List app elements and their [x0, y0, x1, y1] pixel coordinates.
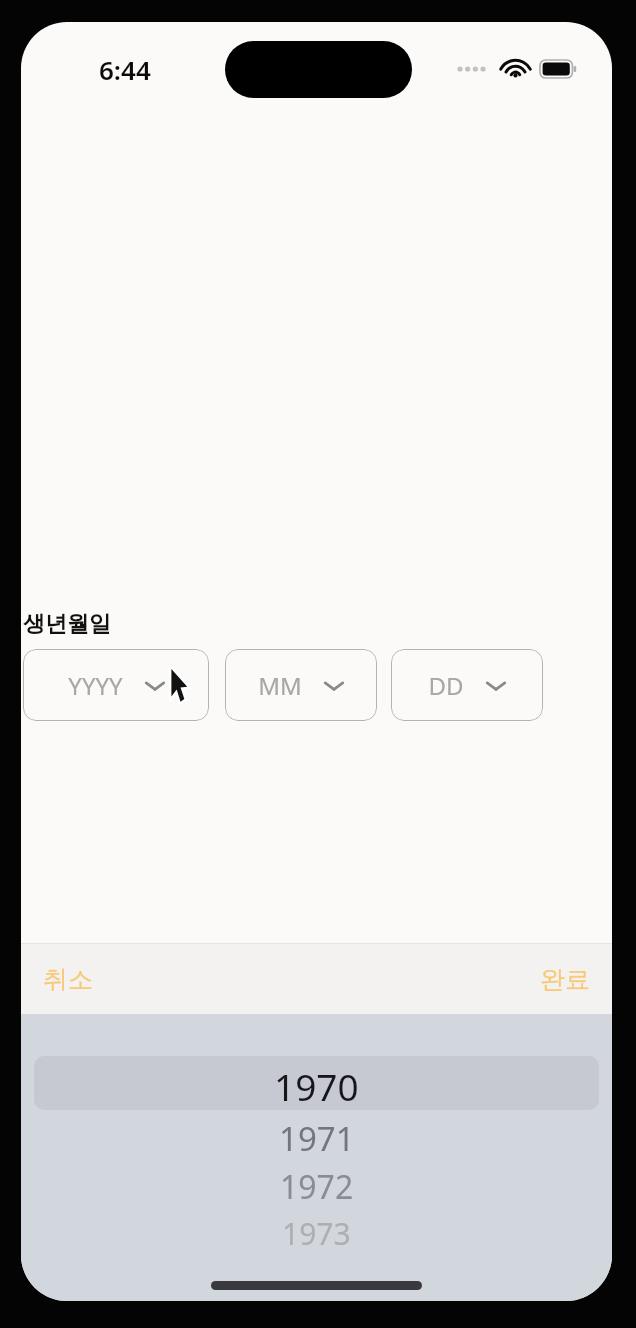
button[interactable]: YYYY [23, 649, 209, 721]
button[interactable]: 1972 [280, 1165, 354, 1209]
button[interactable]: 완료 [518, 951, 612, 1008]
staticText: 6:44 [99, 52, 151, 87]
staticText: DD [428, 669, 464, 702]
button[interactable]: MM [225, 649, 377, 721]
button[interactable]: 취소 [21, 951, 115, 1008]
button[interactable]: DD [391, 649, 543, 721]
button[interactable]: 1971 [279, 1116, 355, 1161]
button[interactable]: 1970 [274, 1061, 359, 1111]
staticText: YYYY [68, 669, 123, 702]
button[interactable]: 1973 [282, 1213, 351, 1254]
staticText: 취소 [43, 964, 93, 995]
staticText: MM [258, 669, 302, 702]
staticText: 완료 [540, 964, 590, 995]
staticText: 생년월일 [23, 610, 111, 638]
